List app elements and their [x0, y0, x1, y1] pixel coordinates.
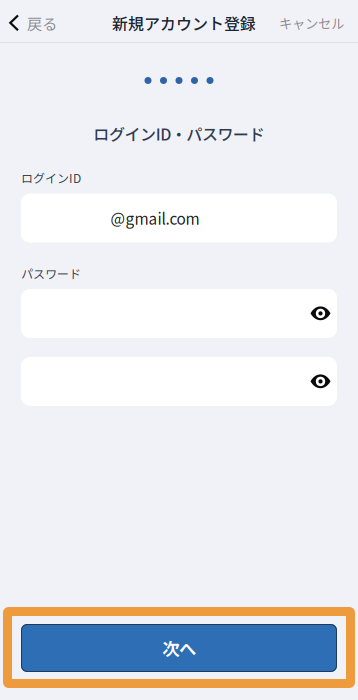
staticText: ログインID・パスワード — [93, 122, 265, 145]
staticText: 新規アカウント登録 — [112, 11, 256, 35]
button[interactable]: パスワードを表示 — [304, 357, 337, 406]
button[interactable]: 戻る — [0, 0, 60, 43]
staticText: ログインID — [21, 169, 81, 187]
staticText: パスワード — [21, 264, 81, 282]
staticText: 戻る — [27, 12, 57, 34]
button[interactable]: パスワードを表示 — [304, 289, 337, 338]
button[interactable]: 次へ — [21, 624, 337, 672]
staticText: キャンセル — [279, 13, 344, 33]
staticText: 次へ — [162, 635, 196, 661]
staticText: @gmail.com — [110, 207, 199, 229]
button[interactable]: キャンセル — [273, 0, 358, 43]
